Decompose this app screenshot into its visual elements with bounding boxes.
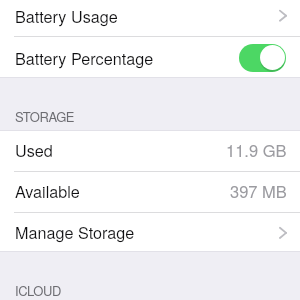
button[interactable]: Manage Storage: [0, 211, 300, 251]
button[interactable]: Battery Percentage: [0, 37, 300, 78]
button[interactable]: Battery Percentage switch, on: [239, 44, 286, 72]
button[interactable]: Used: [0, 129, 300, 169]
staticText: Battery Percentage: [15, 46, 154, 69]
staticText: 11.9 GB: [226, 138, 287, 162]
staticText: Available: [15, 179, 80, 202]
other: Open Battery Usage: [260, 0, 300, 36]
staticText: Manage Storage: [15, 220, 135, 243]
staticText: Battery Usage: [15, 4, 118, 27]
button[interactable]: Battery Usage: [0, 0, 300, 36]
button[interactable]: Available: [0, 170, 300, 210]
other: Open Manage Storage: [260, 211, 300, 251]
staticText: 397 MB: [230, 179, 287, 203]
staticText: STORAGE: [15, 107, 75, 126]
staticText: ICLOUD: [15, 281, 61, 300]
staticText: Used: [15, 138, 53, 161]
